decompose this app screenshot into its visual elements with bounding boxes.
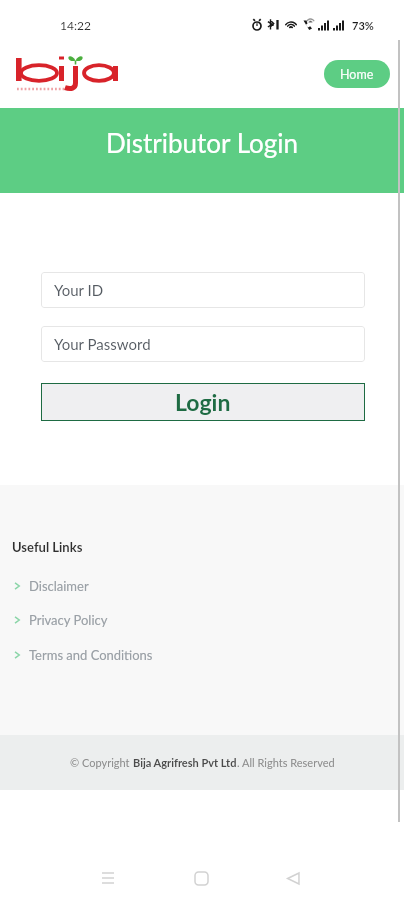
staticText: Login — [175, 388, 231, 416]
staticText: Your ID — [54, 281, 104, 299]
button[interactable]: Login — [41, 383, 365, 421]
button[interactable]: Your ID — [41, 272, 365, 308]
staticText: Bija Agrifresh Pvt Ltd — [133, 756, 237, 769]
staticText: Terms and Conditions — [29, 647, 153, 663]
button[interactable]: Your Password — [41, 326, 365, 362]
staticText: Privacy Policy — [29, 612, 108, 628]
staticText: Home — [340, 67, 374, 82]
staticText: . All Rights Reserved — [237, 756, 335, 769]
staticText: © Copyright — [70, 756, 133, 769]
button[interactable]: Home — [324, 60, 390, 88]
staticText: Distributor Login — [106, 127, 299, 158]
staticText: 73% — [352, 19, 374, 32]
staticText: Your Password — [54, 335, 151, 353]
staticText: 14:22 — [60, 18, 91, 32]
button[interactable]: Recent apps — [88, 858, 128, 898]
button[interactable]: Home — [181, 858, 221, 898]
staticText: Useful Links — [12, 539, 83, 555]
button[interactable]: Disclaimer — [0, 571, 404, 601]
button[interactable]: Privacy Policy — [0, 605, 404, 635]
button[interactable]: Terms and Conditions — [0, 640, 404, 670]
button[interactable]: Back — [273, 858, 313, 898]
staticText: Disclaimer — [29, 578, 89, 594]
